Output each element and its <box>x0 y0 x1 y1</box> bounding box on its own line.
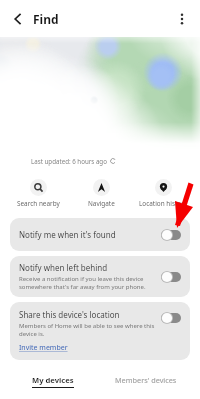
button[interactable]: Search nearby <box>6 179 70 208</box>
staticText: Share this device's location <box>19 309 120 320</box>
staticText: Members' devices <box>115 375 177 385</box>
button[interactable]: Back <box>8 9 28 29</box>
staticText: Last updated: 6 hours ago <box>31 157 107 165</box>
button[interactable]: More options <box>173 10 191 28</box>
button[interactable]: Toggle off <box>161 312 181 324</box>
staticText: Members of Home will be able to see wher… <box>19 322 155 338</box>
staticText: My devices <box>32 375 74 385</box>
button[interactable]: Toggle off <box>161 271 181 283</box>
staticText: Search nearby <box>17 199 60 208</box>
button[interactable]: Members' devices <box>100 366 200 399</box>
staticText: Notify when left behind <box>19 262 108 273</box>
staticText: Location history <box>139 199 188 208</box>
staticText: Notify me when it's found <box>19 229 116 240</box>
button[interactable]: Notify me when it's found <box>10 218 190 251</box>
button[interactable]: My devices <box>0 366 100 399</box>
button[interactable]: Location history <box>131 179 195 208</box>
staticText: Navigate <box>88 199 115 208</box>
button[interactable]: Notify when left behind <box>10 256 190 297</box>
button[interactable]: Invite member <box>19 343 68 353</box>
button[interactable]: Toggle off <box>161 229 181 241</box>
staticText: Find <box>33 11 59 27</box>
button[interactable]: Navigate <box>69 179 133 208</box>
staticText: Receive a notification if you leave this… <box>19 275 146 291</box>
